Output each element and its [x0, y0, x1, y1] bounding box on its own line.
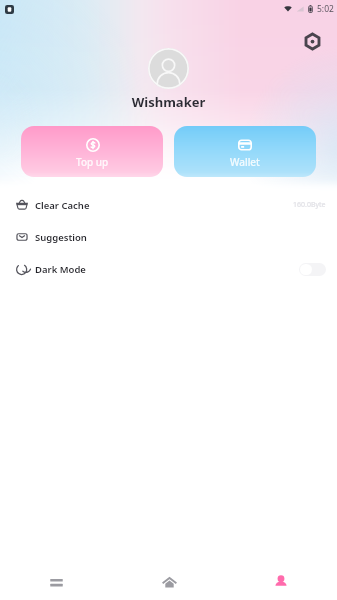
button[interactable]: Top up: [21, 126, 163, 177]
button[interactable]: Clear Cache: [0, 189, 337, 221]
staticText: Dark Mode: [35, 263, 86, 276]
staticText: Wishmaker: [0, 93, 337, 111]
button[interactable]: Wallet: [174, 126, 316, 177]
staticText: Wallet: [230, 155, 260, 169]
staticText: Suggestion: [35, 231, 87, 244]
staticText: 5:02: [317, 3, 334, 15]
staticText: 160.0Byte: [293, 200, 326, 210]
button[interactable]: Dark Mode: [0, 253, 337, 285]
staticText: Top up: [76, 155, 109, 169]
button[interactable]: Profile: [225, 556, 337, 600]
staticText: Clear Cache: [35, 199, 90, 212]
button[interactable]: Dark mode toggle: [299, 263, 326, 276]
button[interactable]: Settings: [297, 26, 327, 56]
button[interactable]: Home: [113, 556, 225, 600]
button[interactable]: List: [0, 556, 113, 600]
button[interactable]: Suggestion: [0, 221, 337, 253]
